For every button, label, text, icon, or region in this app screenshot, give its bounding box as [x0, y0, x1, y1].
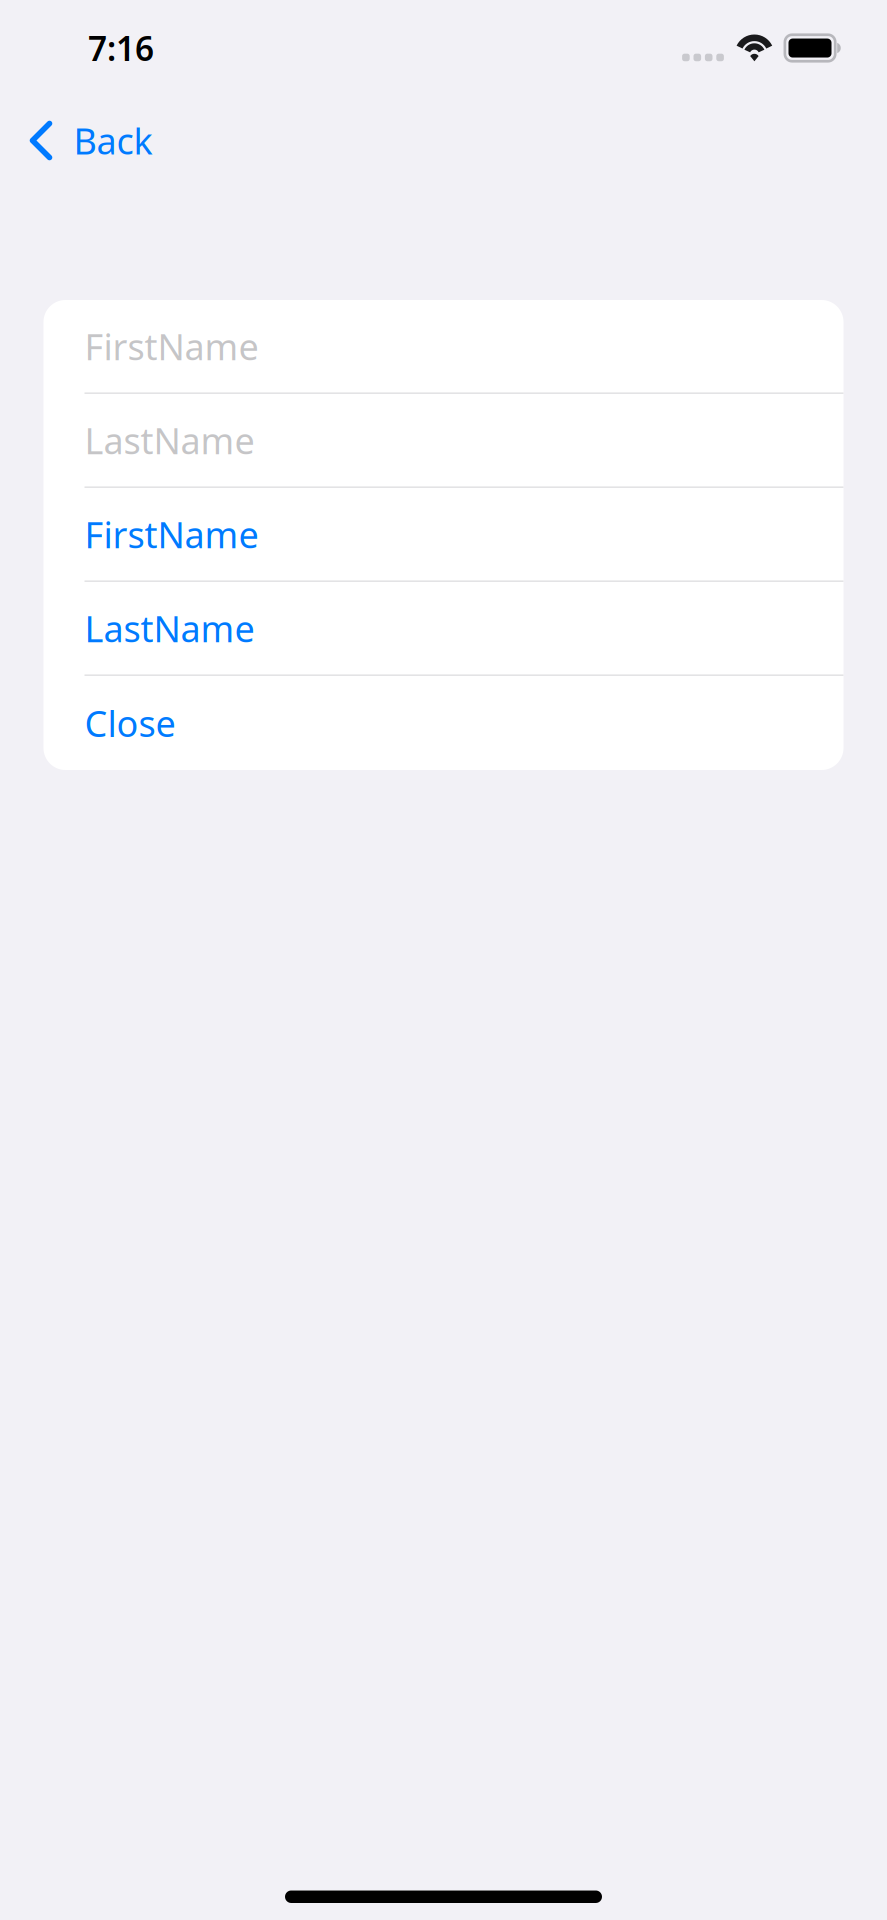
button[interactable]: LastName — [43, 582, 843, 674]
button[interactable]: FirstName — [43, 300, 843, 392]
staticText: Back — [73, 117, 152, 164]
staticText: FirstName — [84, 510, 258, 558]
staticText: LastName — [84, 604, 254, 652]
button[interactable]: FirstName — [43, 488, 843, 580]
staticText: Close — [84, 699, 175, 747]
button[interactable]: Back — [0, 99, 164, 179]
staticText: 7:16 — [88, 26, 154, 70]
staticText: FirstName — [84, 322, 258, 370]
button[interactable]: Close — [43, 676, 843, 770]
staticText: LastName — [84, 416, 254, 464]
button[interactable]: LastName — [43, 394, 843, 486]
